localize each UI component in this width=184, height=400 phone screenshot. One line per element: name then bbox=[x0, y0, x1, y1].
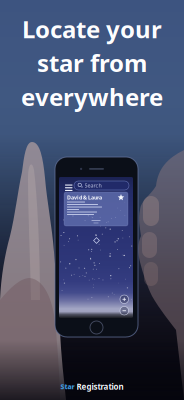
staticText: Registration bbox=[76, 381, 123, 392]
staticText: everywhere bbox=[21, 81, 163, 113]
button[interactable]: Search bbox=[74, 181, 129, 190]
button[interactable]: Zoom in bbox=[120, 295, 128, 303]
staticText: Star bbox=[60, 382, 74, 391]
button[interactable]: Menu bbox=[63, 182, 74, 193]
staticText: Locate your bbox=[22, 13, 162, 45]
button[interactable]: Zoom out bbox=[120, 306, 128, 315]
staticText: Search bbox=[85, 182, 102, 189]
staticText: star from bbox=[37, 47, 147, 79]
staticText: David & Laura bbox=[67, 194, 102, 201]
